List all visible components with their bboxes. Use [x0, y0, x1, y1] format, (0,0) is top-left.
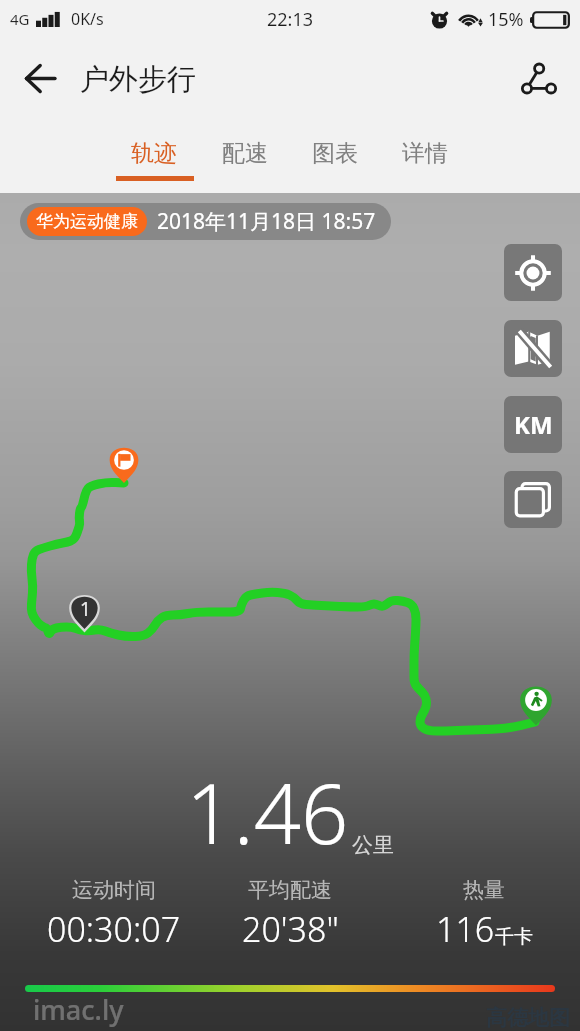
staticText: 图表 [312, 139, 358, 168]
button[interactable]: 图表 [290, 115, 380, 193]
staticText: 高德地图 [486, 1005, 570, 1031]
staticText: 2018年11月18日 18:57 [157, 207, 376, 236]
staticText: 22:13 [267, 7, 314, 32]
staticText: 户外步行 [80, 61, 196, 98]
staticText: 20'38" [242, 906, 339, 952]
staticText: 千卡 [495, 925, 533, 949]
button[interactable]: Share [509, 50, 567, 106]
button[interactable]: Map layers [504, 471, 562, 528]
button[interactable]: Locate [504, 244, 562, 301]
staticText: 运动时间 [72, 877, 156, 903]
button[interactable]: Back [8, 50, 72, 106]
staticText: 15% [488, 7, 524, 32]
staticText: 配速 [222, 139, 268, 168]
staticText: 平均配速 [248, 877, 332, 903]
staticText: 116 [436, 906, 495, 952]
staticText: 轨迹 [131, 139, 177, 168]
staticText: 华为运动健康 [36, 211, 138, 232]
staticText: 热量 [463, 877, 505, 903]
button[interactable]: 配速 [200, 115, 290, 193]
staticText: 00:30:07 [47, 906, 181, 952]
staticText: imac.ly [33, 991, 124, 1028]
staticText: 4G [10, 9, 30, 29]
button[interactable]: 详情 [380, 115, 470, 193]
staticText: KM [514, 408, 553, 441]
staticText: 公里 [352, 832, 394, 858]
staticText: 1.46 [186, 755, 349, 868]
staticText: 1 [80, 596, 91, 622]
staticText: 详情 [402, 139, 448, 168]
button[interactable]: 轨迹 [109, 115, 199, 193]
staticText: 0K/s [71, 8, 104, 30]
button[interactable]: KM [504, 396, 562, 453]
button[interactable]: Hide map [504, 320, 562, 377]
